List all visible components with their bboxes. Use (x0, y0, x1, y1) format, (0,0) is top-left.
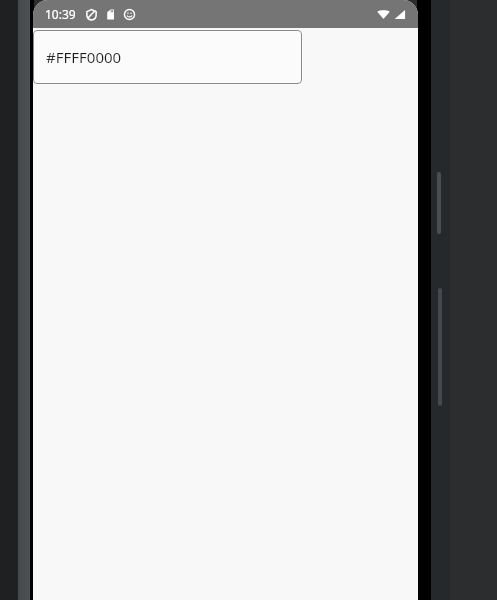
button[interactable]: Color hex value field (33, 30, 302, 84)
staticText: #FFFF0000 (46, 47, 122, 67)
staticText: 10:39 (45, 6, 76, 22)
